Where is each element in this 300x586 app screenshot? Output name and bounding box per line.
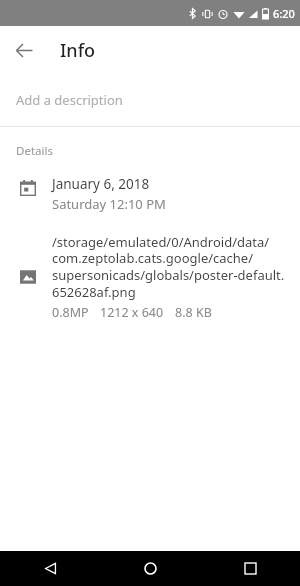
staticText: Info: [60, 38, 96, 63]
button[interactable]: Recent apps: [200, 551, 300, 586]
button[interactable]: /storage/emulated/0/Android/data/ com.ze…: [0, 221, 300, 329]
staticText: 1212 x 640: [100, 304, 164, 321]
staticText: January 6, 2018: [52, 175, 150, 193]
staticText: Details: [16, 143, 53, 159]
button[interactable]: Back: [4, 30, 44, 70]
button[interactable]: Back: [0, 551, 100, 586]
staticText: 0.8MP: [52, 304, 89, 321]
button[interactable]: Home: [100, 551, 200, 586]
staticText: /storage/emulated/0/Android/data/ com.ze…: [52, 233, 285, 301]
staticText: Add a description: [16, 91, 123, 109]
button[interactable]: January 6, 2018: [0, 165, 300, 221]
button[interactable]: Add a description: [0, 74, 300, 126]
staticText: 6:20: [273, 6, 295, 21]
staticText: Saturday 12:10 PM: [52, 195, 166, 213]
staticText: 8.8 KB: [175, 304, 212, 321]
